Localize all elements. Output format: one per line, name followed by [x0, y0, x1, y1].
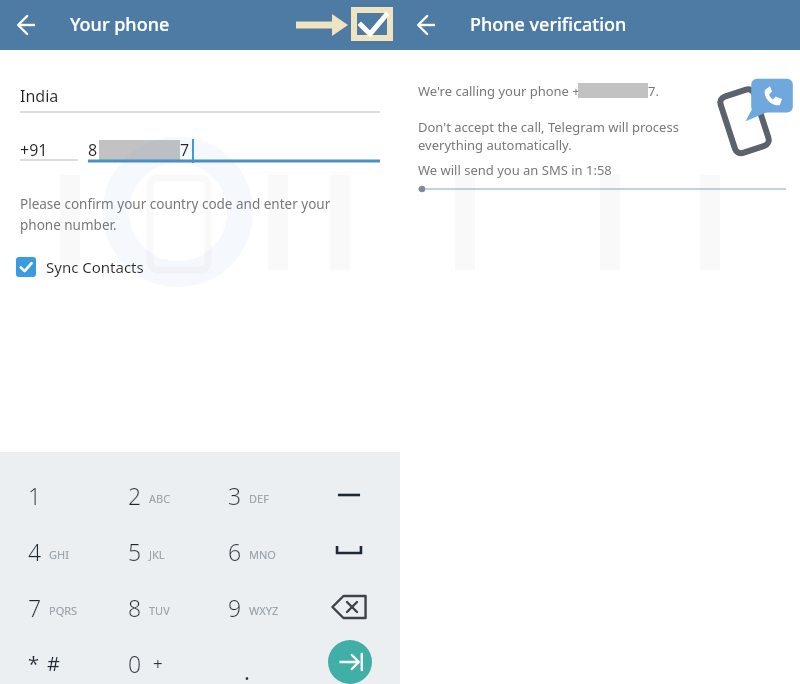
staticText: +	[153, 652, 163, 675]
staticText: GHI	[49, 547, 69, 562]
staticText: 2	[128, 480, 142, 511]
button[interactable]: Backspace	[326, 584, 372, 630]
staticText: DEF	[249, 491, 269, 506]
button[interactable]: +91	[20, 139, 76, 167]
button[interactable]: Sync Contacts	[16, 252, 186, 282]
button[interactable]: 8	[128, 584, 220, 630]
staticText: Please confirm your country code and ent…	[20, 195, 365, 234]
button[interactable]: 9	[228, 584, 320, 630]
staticText: #	[47, 650, 60, 677]
staticText: 8	[128, 592, 142, 623]
staticText: 8	[88, 139, 98, 161]
staticText: We will send you an SMS in 1:58	[418, 161, 612, 179]
button[interactable]: 6	[228, 528, 320, 574]
staticText: +91	[20, 139, 48, 161]
staticText: Phone verification	[470, 12, 627, 37]
button[interactable]: 4	[28, 528, 120, 574]
button[interactable]: Space	[326, 528, 372, 574]
button[interactable]: Enter	[328, 640, 372, 684]
button[interactable]: 1	[28, 472, 120, 518]
staticText: 6	[228, 536, 242, 567]
button[interactable]: Done	[352, 4, 394, 46]
staticText: TUV	[149, 603, 170, 618]
staticText: WXYZ	[249, 603, 279, 618]
staticText: Your phone	[70, 12, 170, 37]
staticText: 3	[228, 480, 242, 511]
staticText: Don't accept the call, Telegram will pro…	[418, 118, 688, 154]
staticText: 7	[180, 139, 190, 161]
staticText: Sync Contacts	[46, 257, 144, 277]
button[interactable]: India	[20, 85, 380, 117]
button[interactable]: 2	[128, 472, 220, 518]
staticText: 5	[128, 536, 142, 567]
staticText: ABC	[149, 491, 171, 506]
button[interactable]: 8	[88, 139, 380, 169]
button[interactable]: Dash	[326, 472, 372, 518]
staticText: PQRS	[49, 603, 78, 618]
button[interactable]: .	[228, 640, 320, 684]
staticText: MNO	[249, 547, 276, 562]
staticText: JKL	[149, 547, 165, 562]
button[interactable]: 7	[28, 584, 120, 630]
button[interactable]: 3	[228, 472, 320, 518]
staticText: 4	[28, 536, 42, 567]
button[interactable]: 0	[128, 640, 220, 684]
staticText: We're calling your phone +91 8	[418, 82, 606, 100]
staticText: India	[20, 85, 59, 107]
button[interactable]: Back	[12, 11, 40, 39]
staticText: 9	[228, 592, 242, 623]
staticText: 1	[28, 480, 42, 511]
button[interactable]: 5	[128, 528, 220, 574]
button[interactable]: *	[28, 640, 120, 684]
staticText: 7.	[648, 82, 659, 100]
staticText: 7	[28, 592, 42, 623]
button[interactable]: Back	[412, 11, 440, 39]
staticText: *	[28, 650, 40, 677]
staticText: 0	[128, 648, 142, 679]
staticText: .	[244, 656, 250, 684]
